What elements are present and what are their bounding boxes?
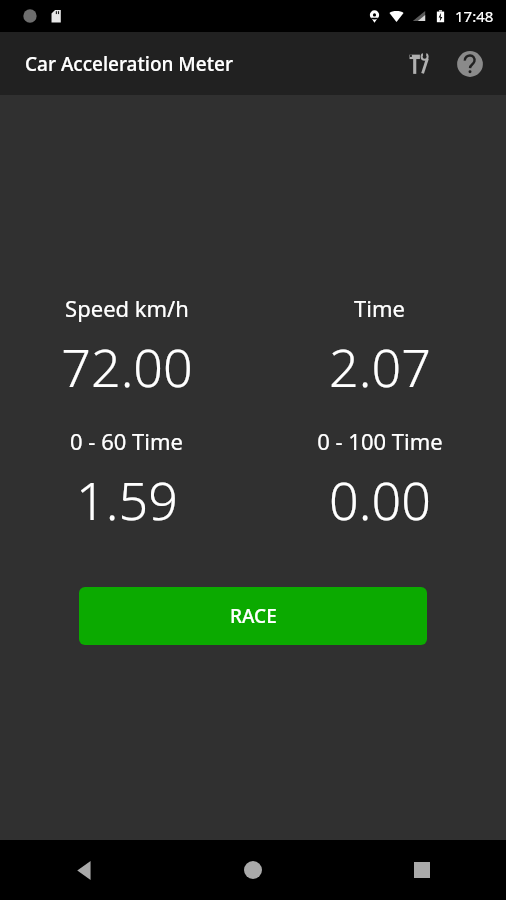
staticText: 2.07 [329,331,431,402]
staticText: 0 - 100 Time [317,426,443,456]
staticText: 1.59 [76,464,178,535]
staticText: 72.00 [61,331,193,402]
staticText: RACE [230,603,277,629]
staticText: Car Acceleration Meter [25,51,233,77]
button[interactable]: Recent apps [337,840,506,900]
staticText: 17:48 [455,6,494,26]
staticText: Time [354,293,405,323]
button[interactable]: RACE [79,587,427,645]
button[interactable]: Help [446,40,494,88]
staticText: Speed km/h [65,293,189,323]
button[interactable]: Settings [398,40,446,88]
staticText: 0.00 [329,464,431,535]
staticText: 0 - 60 Time [70,426,183,456]
button[interactable]: Home [168,840,337,900]
button[interactable]: Back [0,840,168,900]
